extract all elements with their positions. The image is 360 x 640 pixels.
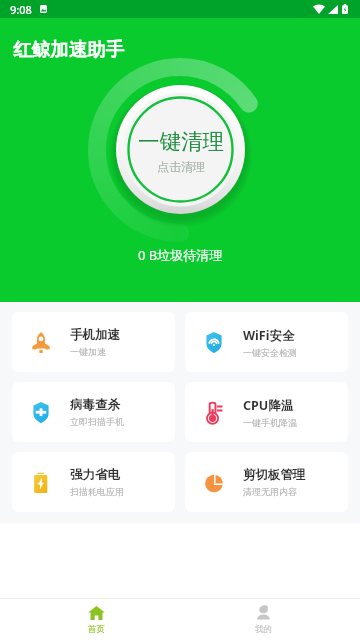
button[interactable]: WiFi安全: [185, 312, 348, 372]
staticText: 清理无用内容: [243, 486, 297, 497]
staticText: 一键安全检测: [243, 347, 297, 358]
staticText: 红鲸加速助手: [13, 38, 124, 61]
staticText: 剪切板管理: [243, 467, 306, 483]
staticText: WiFi安全: [243, 327, 295, 344]
staticText: 手机加速: [70, 327, 120, 343]
button[interactable]: 强力省电: [12, 452, 175, 512]
staticText: 病毒查杀: [70, 397, 120, 413]
staticText: 强力省电: [70, 467, 120, 483]
button[interactable]: 一键清理: [116, 85, 245, 214]
staticText: 扫描耗电应用: [70, 486, 124, 497]
staticText: 首页: [88, 624, 105, 635]
button[interactable]: 剪切板管理: [185, 452, 348, 512]
staticText: 立即扫描手机: [70, 416, 124, 427]
staticText: CPU降温: [243, 397, 294, 414]
button[interactable]: 我的: [180, 599, 347, 640]
staticText: 一键加速: [70, 346, 106, 357]
button[interactable]: 手机加速: [12, 312, 175, 372]
staticText: 点击清理: [157, 159, 205, 174]
staticText: 一键清理: [138, 128, 224, 155]
button[interactable]: CPU降温: [185, 382, 348, 442]
other: Screenshot: [40, 5, 47, 13]
button[interactable]: 病毒查杀: [12, 382, 175, 442]
staticText: 9:08: [10, 2, 32, 17]
staticText: 0 B垃圾待清理: [138, 246, 223, 264]
staticText: 我的: [255, 624, 272, 635]
staticText: 一键手机降温: [243, 417, 297, 428]
button[interactable]: 首页: [13, 599, 180, 640]
